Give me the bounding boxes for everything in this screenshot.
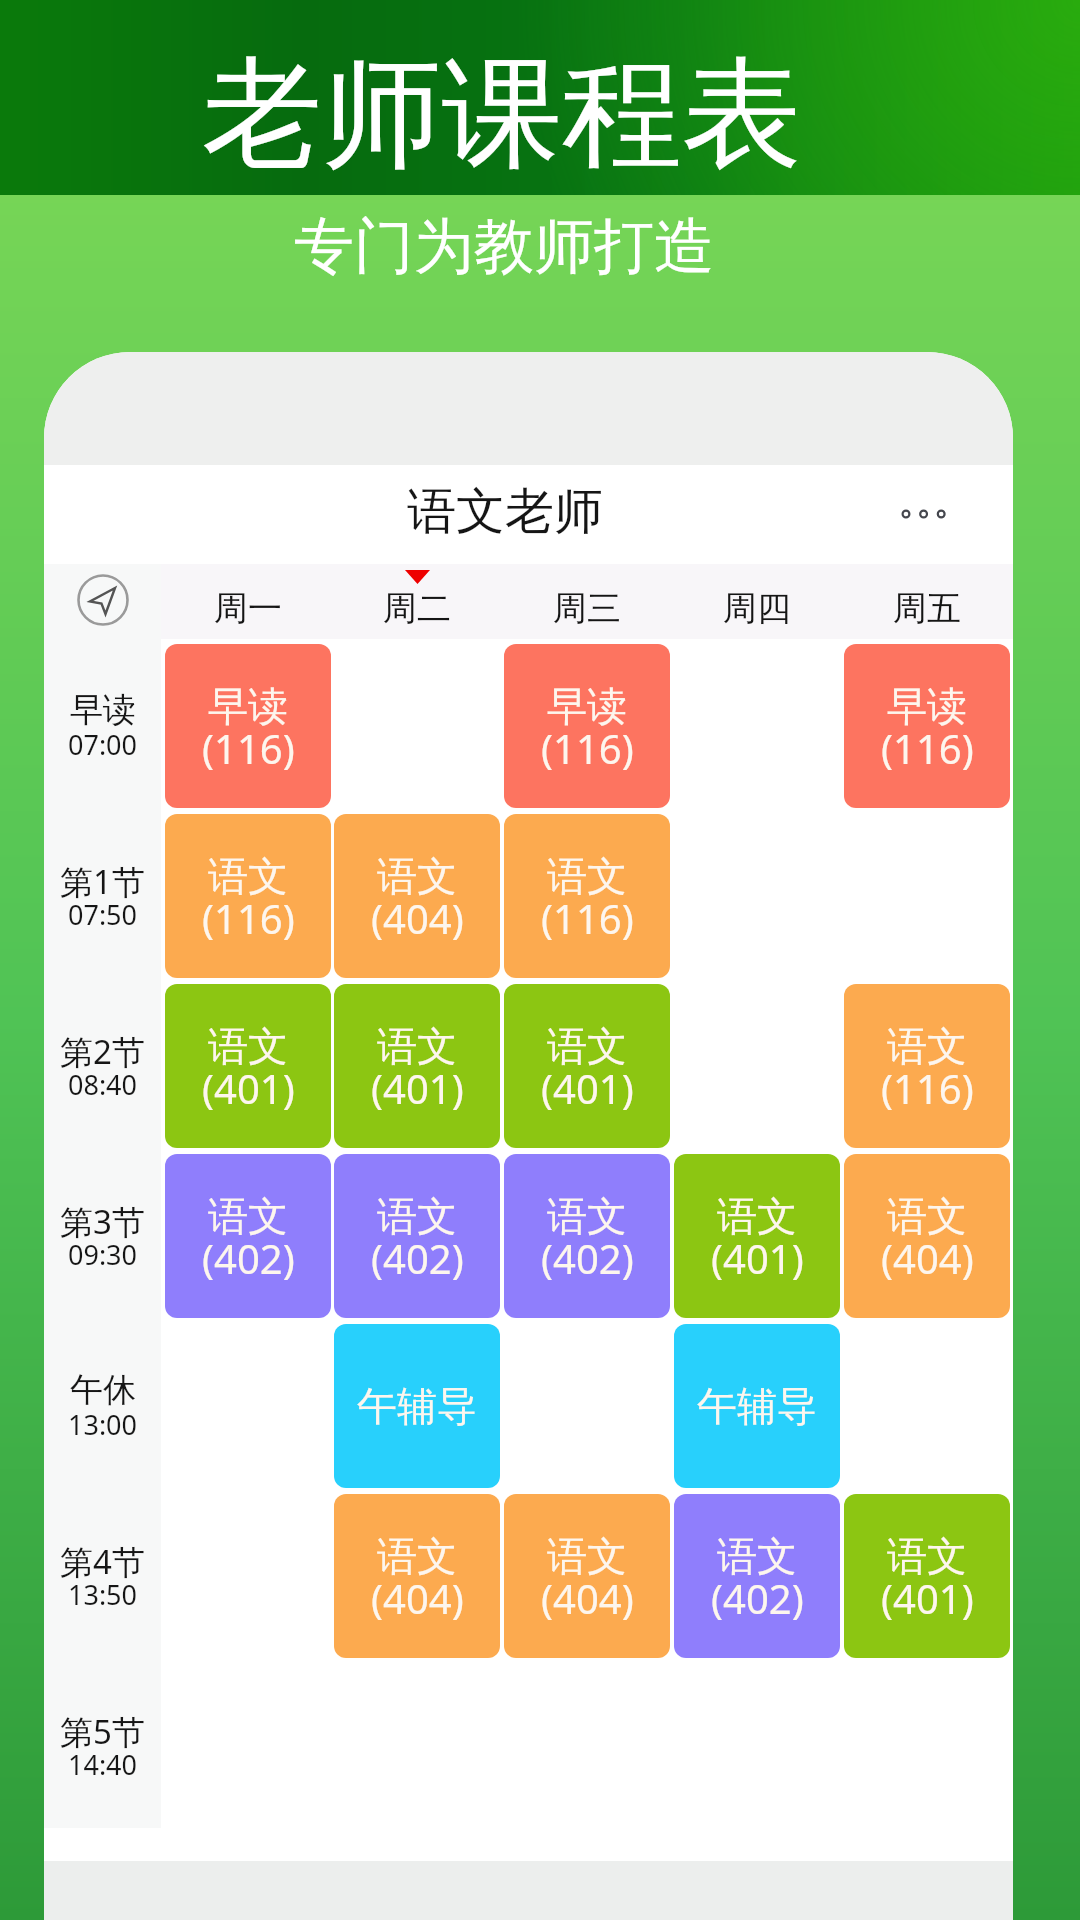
button[interactable]: 早读 xyxy=(165,644,331,808)
button[interactable]: 语文 xyxy=(165,1154,331,1318)
staticText: 第2节 xyxy=(60,1029,145,1074)
staticText: 第1节 xyxy=(60,859,145,904)
staticText: (116) xyxy=(202,721,295,775)
staticText: 午休 xyxy=(70,1369,136,1411)
staticText: 第3节 xyxy=(60,1199,145,1244)
button[interactable]: 语文 xyxy=(334,984,500,1148)
button[interactable]: 语文 xyxy=(674,1494,840,1658)
staticText: 周三 xyxy=(553,587,621,630)
staticText: (404) xyxy=(541,1571,634,1625)
button[interactable]: 语文 xyxy=(504,1154,670,1318)
staticText: 13:00 xyxy=(68,1406,138,1443)
button[interactable]: 周四 xyxy=(697,564,817,639)
button[interactable]: 第4节 xyxy=(44,1494,161,1658)
button[interactable]: 语文 xyxy=(504,814,670,978)
button[interactable]: 语文 xyxy=(844,1494,1010,1658)
staticText: (404) xyxy=(371,891,464,945)
button[interactable]: More options xyxy=(876,484,971,544)
button[interactable]: 午辅导 xyxy=(334,1324,500,1488)
button[interactable]: 早读 xyxy=(44,644,161,808)
button[interactable]: 语文 xyxy=(844,984,1010,1148)
staticText: 语文 xyxy=(717,1531,797,1581)
staticText: 07:50 xyxy=(68,896,138,933)
button[interactable]: 早读 xyxy=(504,644,670,808)
button[interactable]: 周五 xyxy=(867,564,987,639)
staticText: 07:00 xyxy=(68,726,138,763)
staticText: 语文 xyxy=(887,1531,967,1581)
button[interactable]: 第5节 xyxy=(44,1664,161,1828)
staticText: 语文 xyxy=(547,1191,627,1241)
button[interactable]: 周二 xyxy=(357,564,477,639)
staticText: 早读 xyxy=(887,681,967,731)
button[interactable]: 午辅导 xyxy=(674,1324,840,1488)
staticText: 语文 xyxy=(377,1191,457,1241)
button[interactable]: 语文 xyxy=(504,984,670,1148)
button[interactable]: 语文 xyxy=(844,1154,1010,1318)
staticText: 语文 xyxy=(208,1021,288,1071)
button[interactable]: 语文 xyxy=(165,814,331,978)
staticText: 午辅导 xyxy=(357,1381,477,1431)
staticText: 语文 xyxy=(208,851,288,901)
staticText: 周五 xyxy=(893,587,961,630)
staticText: (116) xyxy=(541,721,634,775)
staticText: 语文 xyxy=(377,1021,457,1071)
staticText: (401) xyxy=(711,1231,804,1285)
staticText: 语文 xyxy=(208,1191,288,1241)
button[interactable]: 早读 xyxy=(844,644,1010,808)
staticText: 午辅导 xyxy=(697,1381,817,1431)
staticText: (401) xyxy=(202,1061,295,1115)
staticText: 08:40 xyxy=(68,1066,138,1103)
staticText: (401) xyxy=(371,1061,464,1115)
staticText: 语文 xyxy=(887,1021,967,1071)
staticText: 周四 xyxy=(723,587,791,630)
button[interactable]: 语文 xyxy=(504,1494,670,1658)
staticText: 第4节 xyxy=(60,1539,145,1584)
staticText: 专门为教师打造 xyxy=(294,209,714,285)
staticText: 语文老师 xyxy=(407,481,603,543)
staticText: 语文 xyxy=(547,1021,627,1071)
button[interactable]: 语文 xyxy=(165,984,331,1148)
staticText: (402) xyxy=(541,1231,634,1285)
staticText: 周二 xyxy=(383,587,451,630)
staticText: (116) xyxy=(541,891,634,945)
button[interactable]: 周一 xyxy=(188,564,308,639)
staticText: 语文 xyxy=(887,1191,967,1241)
staticText: (404) xyxy=(371,1571,464,1625)
button[interactable]: 语文 xyxy=(334,814,500,978)
button[interactable]: 语文 xyxy=(334,1494,500,1658)
staticText: (116) xyxy=(202,891,295,945)
button[interactable]: 第1节 xyxy=(44,814,161,978)
staticText: 老师课程表 xyxy=(202,39,802,190)
button[interactable]: 午休 xyxy=(44,1324,161,1488)
staticText: 第5节 xyxy=(60,1709,145,1754)
staticText: 语文 xyxy=(547,1531,627,1581)
staticText: 语文 xyxy=(547,851,627,901)
button[interactable]: 周三 xyxy=(527,564,647,639)
staticText: (404) xyxy=(881,1231,974,1285)
staticText: 早读 xyxy=(208,681,288,731)
button[interactable]: 语文 xyxy=(334,1154,500,1318)
staticText: 早读 xyxy=(547,681,627,731)
button[interactable]: Locate today xyxy=(77,574,129,626)
button[interactable]: 语文 xyxy=(674,1154,840,1318)
staticText: 14:40 xyxy=(68,1746,138,1783)
staticText: (401) xyxy=(541,1061,634,1115)
staticText: 语文 xyxy=(717,1191,797,1241)
staticText: 语文 xyxy=(377,851,457,901)
button[interactable]: 第3节 xyxy=(44,1154,161,1318)
staticText: 早读 xyxy=(70,689,136,731)
staticText: (401) xyxy=(881,1571,974,1625)
staticText: (402) xyxy=(202,1231,295,1285)
staticText: (402) xyxy=(371,1231,464,1285)
staticText: 语文 xyxy=(377,1531,457,1581)
staticText: 周一 xyxy=(214,587,282,630)
button[interactable]: 第2节 xyxy=(44,984,161,1148)
staticText: (116) xyxy=(881,1061,974,1115)
staticText: (402) xyxy=(711,1571,804,1625)
button[interactable]: 语文老师 xyxy=(375,465,635,564)
staticText: (116) xyxy=(881,721,974,775)
staticText: 13:50 xyxy=(68,1576,138,1613)
staticText: 09:30 xyxy=(68,1236,138,1273)
